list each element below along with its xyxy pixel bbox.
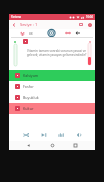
button[interactable]: Recent apps — [71, 141, 80, 150]
staticText: Yarisma — [11, 15, 22, 19]
button[interactable]: Home — [48, 141, 57, 150]
staticText: Vitamin tamam sonraki sorunun yavasi ve … — [24, 49, 89, 57]
button[interactable]: Next track — [38, 129, 49, 140]
button[interactable]: Fosfor — [9, 81, 95, 92]
button[interactable]: Statistics — [55, 129, 66, 140]
button[interactable]: Timer — [47, 29, 56, 37]
button[interactable]: Settings — [85, 20, 94, 29]
button[interactable]: Kultur — [9, 103, 95, 114]
button[interactable]: Kalsiyum — [9, 70, 95, 81]
staticText: Kultur — [23, 106, 34, 111]
staticText: Kalsiyum — [23, 73, 39, 78]
button[interactable]: Shuffle — [20, 129, 31, 140]
button[interactable]: Buyukluk — [9, 92, 95, 103]
staticText: 16:04 — [86, 15, 93, 19]
button[interactable]: Back — [24, 141, 33, 150]
staticText: Buyukluk — [23, 95, 39, 100]
button[interactable]: Back — [9, 20, 18, 29]
button[interactable]: Volume — [73, 129, 84, 140]
staticText: 88 — [29, 32, 33, 36]
staticText: Fosfor — [23, 84, 34, 89]
staticText: Seviye : 1 — [20, 22, 38, 27]
button[interactable]: Notes — [76, 20, 85, 29]
